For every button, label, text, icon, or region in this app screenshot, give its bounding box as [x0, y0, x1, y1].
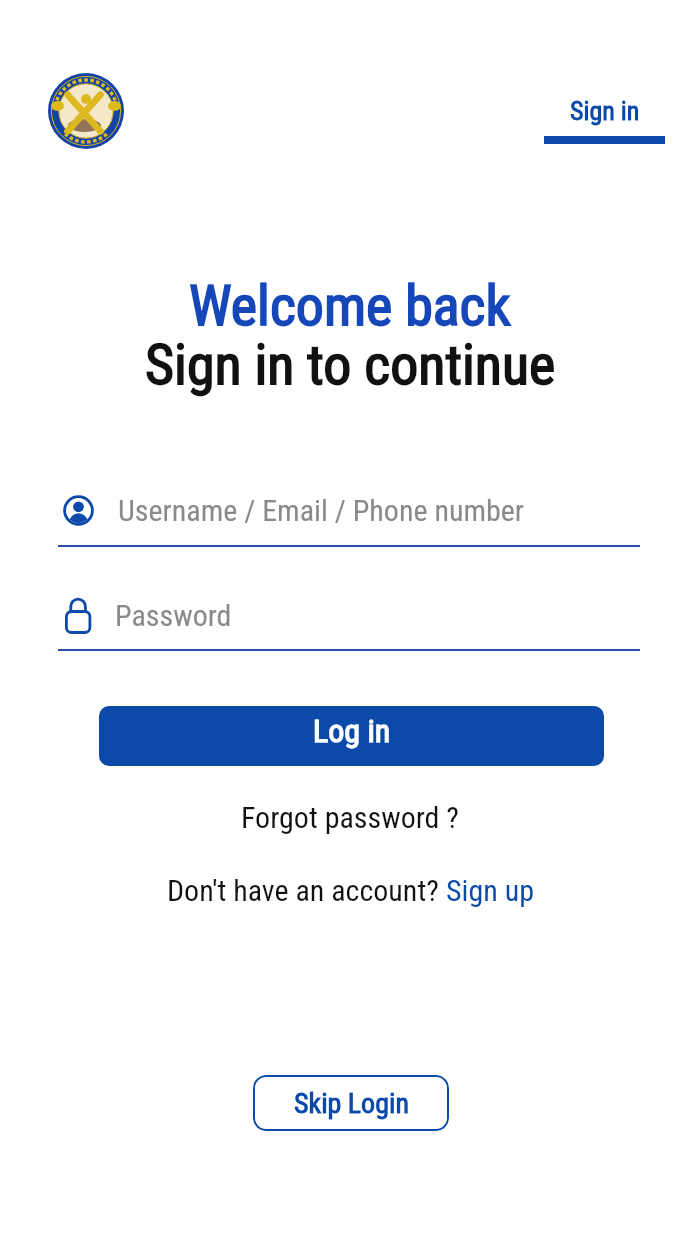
staticText: Password: [115, 598, 232, 633]
button[interactable]: Don't have an account?: [0, 873, 700, 908]
button[interactable]: Username / Email / Phone number: [58, 487, 640, 533]
staticText: Don't have an account?: [167, 873, 446, 908]
staticText: Sign in: [570, 96, 640, 126]
button[interactable]: Forgot password ?: [241, 800, 460, 835]
staticText: Skip Login: [294, 1087, 409, 1120]
button[interactable]: Password: [58, 594, 640, 636]
staticText: Welcome back: [189, 273, 511, 339]
button[interactable]: Skip Login: [253, 1075, 449, 1131]
staticText: Sign up: [446, 873, 534, 908]
button[interactable]: Log in: [99, 706, 604, 766]
staticText: Log in: [313, 712, 391, 750]
staticText: Username / Email / Phone number: [118, 493, 524, 528]
staticText: Sign in to continue: [145, 332, 556, 398]
button[interactable]: Sign in: [544, 92, 665, 144]
